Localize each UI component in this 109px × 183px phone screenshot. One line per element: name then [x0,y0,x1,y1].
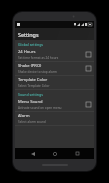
button[interactable]: Back [27,148,38,159]
button[interactable]: Menu Sound [15,98,94,111]
button[interactable]: Alarm [15,112,94,125]
staticText: Set time format as 24 hours [18,56,59,60]
button[interactable]: Home [49,148,60,159]
button[interactable]: Recent apps [72,148,83,159]
staticText: Settings [18,31,39,38]
staticText: Alarm [18,113,30,119]
staticText: 24 Hours [18,49,36,55]
button[interactable]: Toggle Menu Sound [86,102,91,107]
staticText: Shake device to stop alarm [18,70,57,74]
button[interactable]: 24 Hours [15,48,94,61]
button[interactable]: Toggle Shake (PRO) [86,66,91,71]
staticText: Activate sound on open menu [18,106,62,110]
staticText: Select Template Color [18,84,50,88]
staticText: Template Color [18,77,48,83]
staticText: Select alarm sound [18,120,46,124]
staticText: Menu Sound [18,99,43,105]
button[interactable]: Template Color [15,76,94,89]
staticText: Global settings [18,42,44,47]
staticText: Shake (PRO) [18,63,42,69]
staticText: Sound settings [18,92,43,97]
button[interactable]: Toggle 24 Hours [86,52,91,57]
button[interactable]: Shake (PRO) [15,62,94,75]
